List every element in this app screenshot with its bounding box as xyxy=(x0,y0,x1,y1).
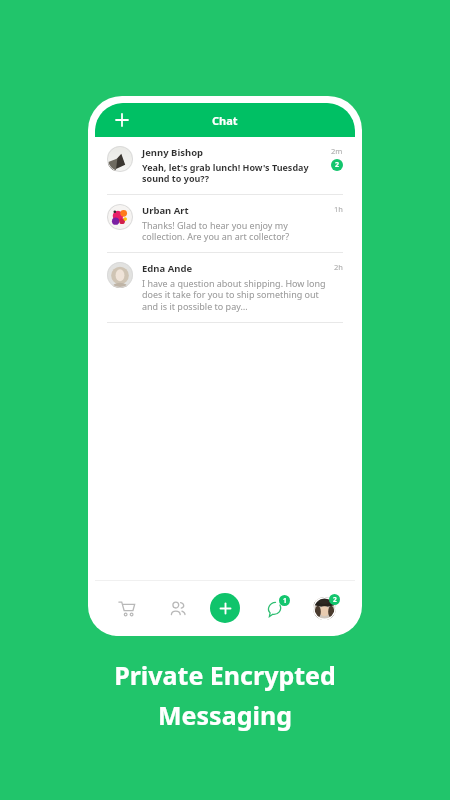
staticText: Chat xyxy=(212,113,238,128)
staticText: Yeah, let's grab lunch! How's Tuesday so… xyxy=(142,161,325,185)
button[interactable]: Jenny Bishop xyxy=(95,137,355,194)
button[interactable]: Profile xyxy=(307,591,341,625)
staticText: 2 xyxy=(333,595,337,604)
staticText: 2 xyxy=(335,160,340,170)
staticText: 1h xyxy=(334,204,343,214)
staticText: Private Encrypted xyxy=(114,658,336,692)
staticText: I have a question about shipping. How lo… xyxy=(142,277,328,313)
button[interactable]: Contacts xyxy=(160,591,194,625)
button[interactable]: New message xyxy=(210,593,240,623)
staticText: 2h xyxy=(334,262,343,272)
staticText: 2m xyxy=(331,146,343,156)
button[interactable]: Edna Ande xyxy=(95,253,355,322)
staticText: Messaging xyxy=(158,698,292,732)
staticText: 1 xyxy=(283,596,287,605)
button[interactable]: Shop xyxy=(109,591,143,625)
button[interactable]: New chat xyxy=(109,107,135,133)
staticText: Urban Art xyxy=(142,204,189,217)
button[interactable]: Urban Art xyxy=(95,195,355,252)
staticText: Thanks! Glad to hear you enjoy my collec… xyxy=(142,219,328,243)
staticText: Jenny Bishop xyxy=(142,146,204,159)
staticText: Edna Ande xyxy=(142,262,193,275)
button[interactable]: Chats xyxy=(257,591,291,625)
